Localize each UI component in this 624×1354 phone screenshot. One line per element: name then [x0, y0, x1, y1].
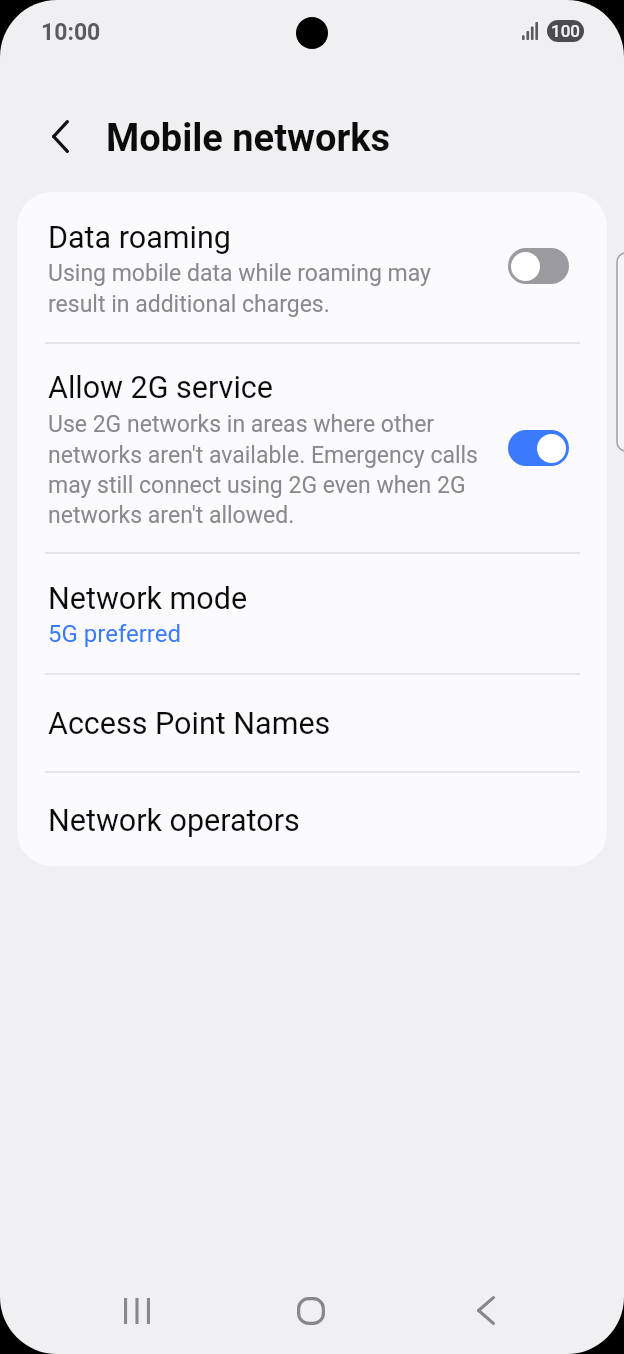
- staticText: Allow 2G service: [48, 370, 273, 406]
- button[interactable]: Home: [271, 1271, 351, 1351]
- button[interactable]: Switch on: [508, 430, 569, 466]
- staticText: Network mode: [48, 581, 248, 617]
- button[interactable]: Navigate up: [36, 112, 84, 160]
- button[interactable]: Access Point Names: [17, 675, 607, 771]
- staticText: Network operators: [48, 803, 300, 839]
- button[interactable]: Switch off: [508, 248, 569, 284]
- button[interactable]: Allow 2G service: [17, 344, 607, 553]
- staticText: 5G preferred: [48, 620, 181, 648]
- button[interactable]: Back: [446, 1270, 526, 1350]
- staticText: Mobile networks: [106, 116, 391, 161]
- staticText: Using mobile data while roaming may resu…: [48, 260, 488, 317]
- button[interactable]: Network mode: [17, 554, 607, 673]
- staticText: Access Point Names: [48, 706, 331, 742]
- staticText: Use 2G networks in areas where other net…: [48, 411, 495, 528]
- staticText: Data roaming: [48, 220, 231, 256]
- button[interactable]: Recent apps: [97, 1271, 177, 1351]
- button[interactable]: Network operators: [17, 773, 607, 866]
- button[interactable]: Data roaming: [17, 192, 607, 342]
- staticText: 10:00: [41, 19, 101, 46]
- staticText: 100: [551, 21, 580, 41]
